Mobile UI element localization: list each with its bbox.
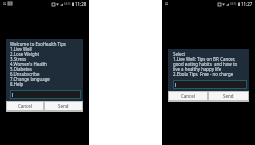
- staticText: Send: [223, 93, 234, 99]
- staticText: good eating habits and how to: [173, 61, 238, 67]
- staticText: 2.Ebola Tips Free - no charge: [173, 71, 234, 77]
- staticText: Cancel: [181, 93, 195, 99]
- button[interactable]: [173, 80, 247, 89]
- staticText: 11:28: [75, 1, 87, 7]
- staticText: 11:27: [241, 1, 253, 7]
- other: Notification: [165, 2, 168, 5]
- staticText: 4.Women's Health: [10, 61, 48, 67]
- other: Notification: [3, 2, 6, 5]
- button[interactable]: Send: [45, 102, 82, 110]
- staticText: 2.Lose Weight: [10, 51, 39, 57]
- staticText: 3.Stress: [10, 56, 27, 62]
- staticText: Welcome to ExoHealth Tips: [10, 41, 66, 47]
- staticText: Select: [173, 51, 186, 57]
- button[interactable]: Cancel: [7, 102, 43, 110]
- staticText: 1.Live Well: [10, 46, 32, 52]
- staticText: 8.Help: [10, 81, 24, 87]
- other: Message: [8, 2, 12, 5]
- button[interactable]: Send: [209, 92, 248, 100]
- staticText: 66%: [64, 2, 71, 6]
- button[interactable]: Cancel: [169, 92, 207, 100]
- staticText: live a healthy happy life: [173, 66, 222, 72]
- staticText: 6.Unsubscribe: [10, 71, 40, 77]
- staticText: 1.Live Well: Tips on BP, Cancer,: [173, 56, 236, 62]
- staticText: Send: [58, 103, 69, 109]
- button[interactable]: [10, 90, 81, 99]
- staticText: Cancel: [18, 103, 32, 109]
- staticText: 66%: [230, 2, 237, 6]
- staticText: 7.Change language: [10, 76, 50, 82]
- staticText: 5.Diabetes: [10, 66, 32, 72]
